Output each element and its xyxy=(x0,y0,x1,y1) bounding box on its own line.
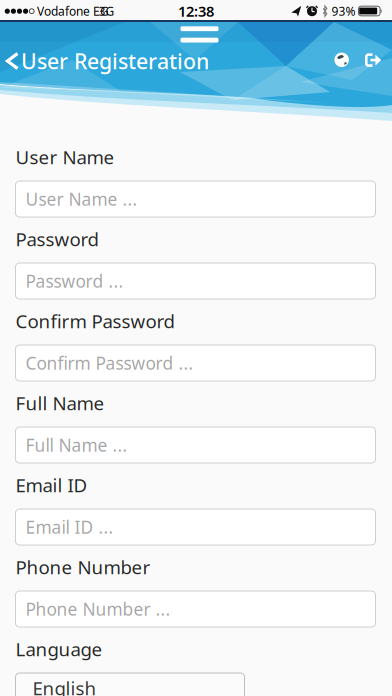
staticText: Full Name ... xyxy=(25,433,127,456)
staticText: 93% xyxy=(331,3,355,19)
button[interactable]: Logout xyxy=(365,53,382,67)
button[interactable]: Back xyxy=(5,51,20,70)
staticText: Full Name xyxy=(15,391,104,415)
button[interactable]: Confirm Password ... xyxy=(15,345,375,381)
staticText: Phone Number xyxy=(15,555,150,579)
staticText: English xyxy=(32,676,96,696)
staticText: User Name xyxy=(15,145,114,169)
staticText: Email ID ... xyxy=(25,515,113,538)
staticText: Confirm Password ... xyxy=(25,351,193,374)
staticText: Vodafone EG xyxy=(37,3,109,19)
staticText: User Name ... xyxy=(25,187,137,210)
button[interactable]: Menu xyxy=(180,26,218,42)
staticText: 3G xyxy=(98,3,114,19)
staticText: Email ID xyxy=(15,473,87,497)
button[interactable]: English xyxy=(15,673,244,696)
button[interactable]: Language xyxy=(334,52,349,67)
staticText: Password ... xyxy=(25,269,123,292)
button[interactable]: Password ... xyxy=(15,263,375,299)
staticText: Password xyxy=(15,227,98,251)
button[interactable]: User Name ... xyxy=(15,181,375,217)
staticText: Language xyxy=(15,637,102,661)
button[interactable]: Email ID ... xyxy=(15,509,375,545)
staticText: User Registeration xyxy=(21,47,209,75)
staticText: Confirm Password xyxy=(15,309,174,333)
button[interactable]: Phone Number ... xyxy=(15,591,375,627)
staticText: Phone Number ... xyxy=(25,597,170,620)
button[interactable]: Full Name ... xyxy=(15,427,375,463)
staticText: 12:38 xyxy=(178,1,214,21)
